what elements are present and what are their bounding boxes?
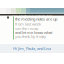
staticText: from last week: [15, 21, 41, 27]
staticText: see the recap: [15, 26, 38, 31]
staticText: you think by friday: [15, 34, 46, 39]
staticText: and let me know what: [15, 30, 52, 35]
staticText: the meeting notes are up: [15, 16, 57, 22]
staticText: SECTION 12 : 100 % AB: [11, 13, 52, 19]
staticText: Hi Jim, Paula, and Lisa: [13, 46, 51, 51]
